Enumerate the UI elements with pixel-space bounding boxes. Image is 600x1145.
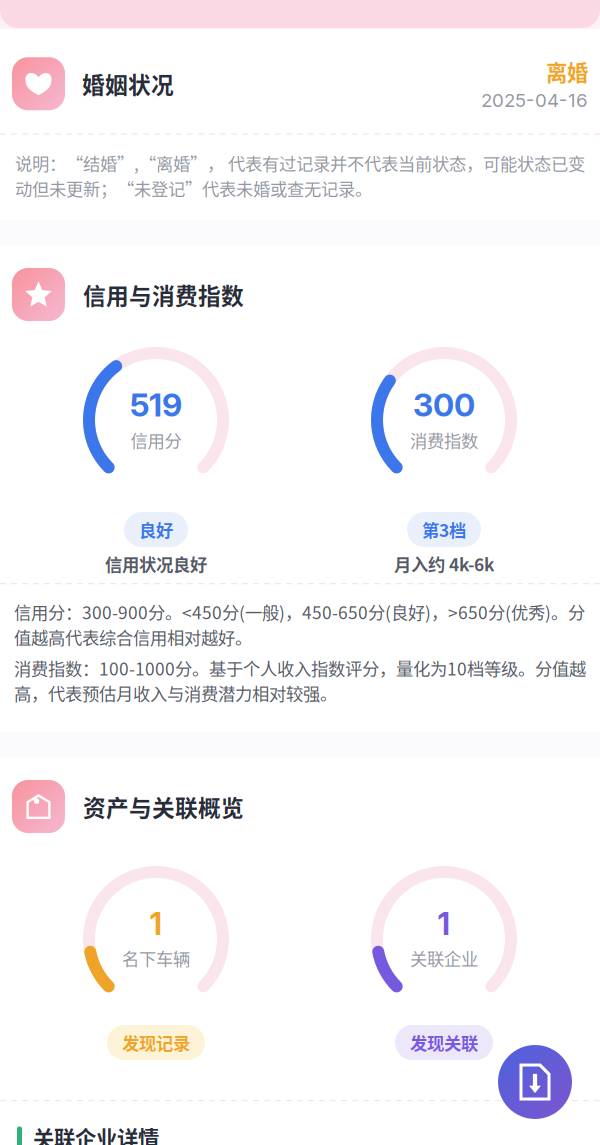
staticText: 月入约 4k-6k: [394, 551, 494, 576]
staticText: 发现关联: [410, 1030, 478, 1055]
staticText: 300: [413, 386, 475, 424]
staticText: 519: [130, 386, 182, 424]
staticText: 关联企业详情: [33, 1122, 159, 1145]
button[interactable]: 第3档: [407, 512, 481, 547]
staticText: 1: [149, 905, 162, 942]
staticText: 1: [437, 905, 450, 942]
staticText: 信用状况良好: [105, 551, 207, 576]
staticText: 关联企业: [410, 945, 478, 971]
button[interactable]: 良好: [124, 512, 188, 547]
staticText: 消费指数: [410, 427, 478, 452]
staticText: 2025-04-16: [481, 89, 588, 111]
button[interactable]: 发现关联: [395, 1025, 493, 1060]
button[interactable]: 发现记录: [107, 1025, 205, 1060]
staticText: 说明：“结婚”,“离婚”， 代表有过记录并不代表当前状态，可能状态已变动但未更新…: [15, 150, 585, 201]
staticText: 信用与消费指数: [83, 278, 244, 311]
button[interactable]: Download report: [498, 1045, 572, 1119]
staticText: 离婚: [546, 56, 588, 87]
staticText: 第3档: [422, 517, 466, 542]
staticText: 发现记录: [122, 1030, 190, 1055]
staticText: 名下车辆: [122, 945, 190, 971]
staticText: 消费指数：100-1000分。基于个人收入指数评分，量化为10档等级。分值越高，…: [14, 655, 586, 706]
staticText: 资产与关联概览: [83, 790, 244, 823]
staticText: 信用分：300-900分。<450分(一般)，450-650分(良好)，>650…: [14, 599, 585, 649]
staticText: 婚姻状况: [82, 67, 174, 100]
staticText: 良好: [139, 517, 173, 542]
staticText: 信用分: [130, 427, 181, 452]
